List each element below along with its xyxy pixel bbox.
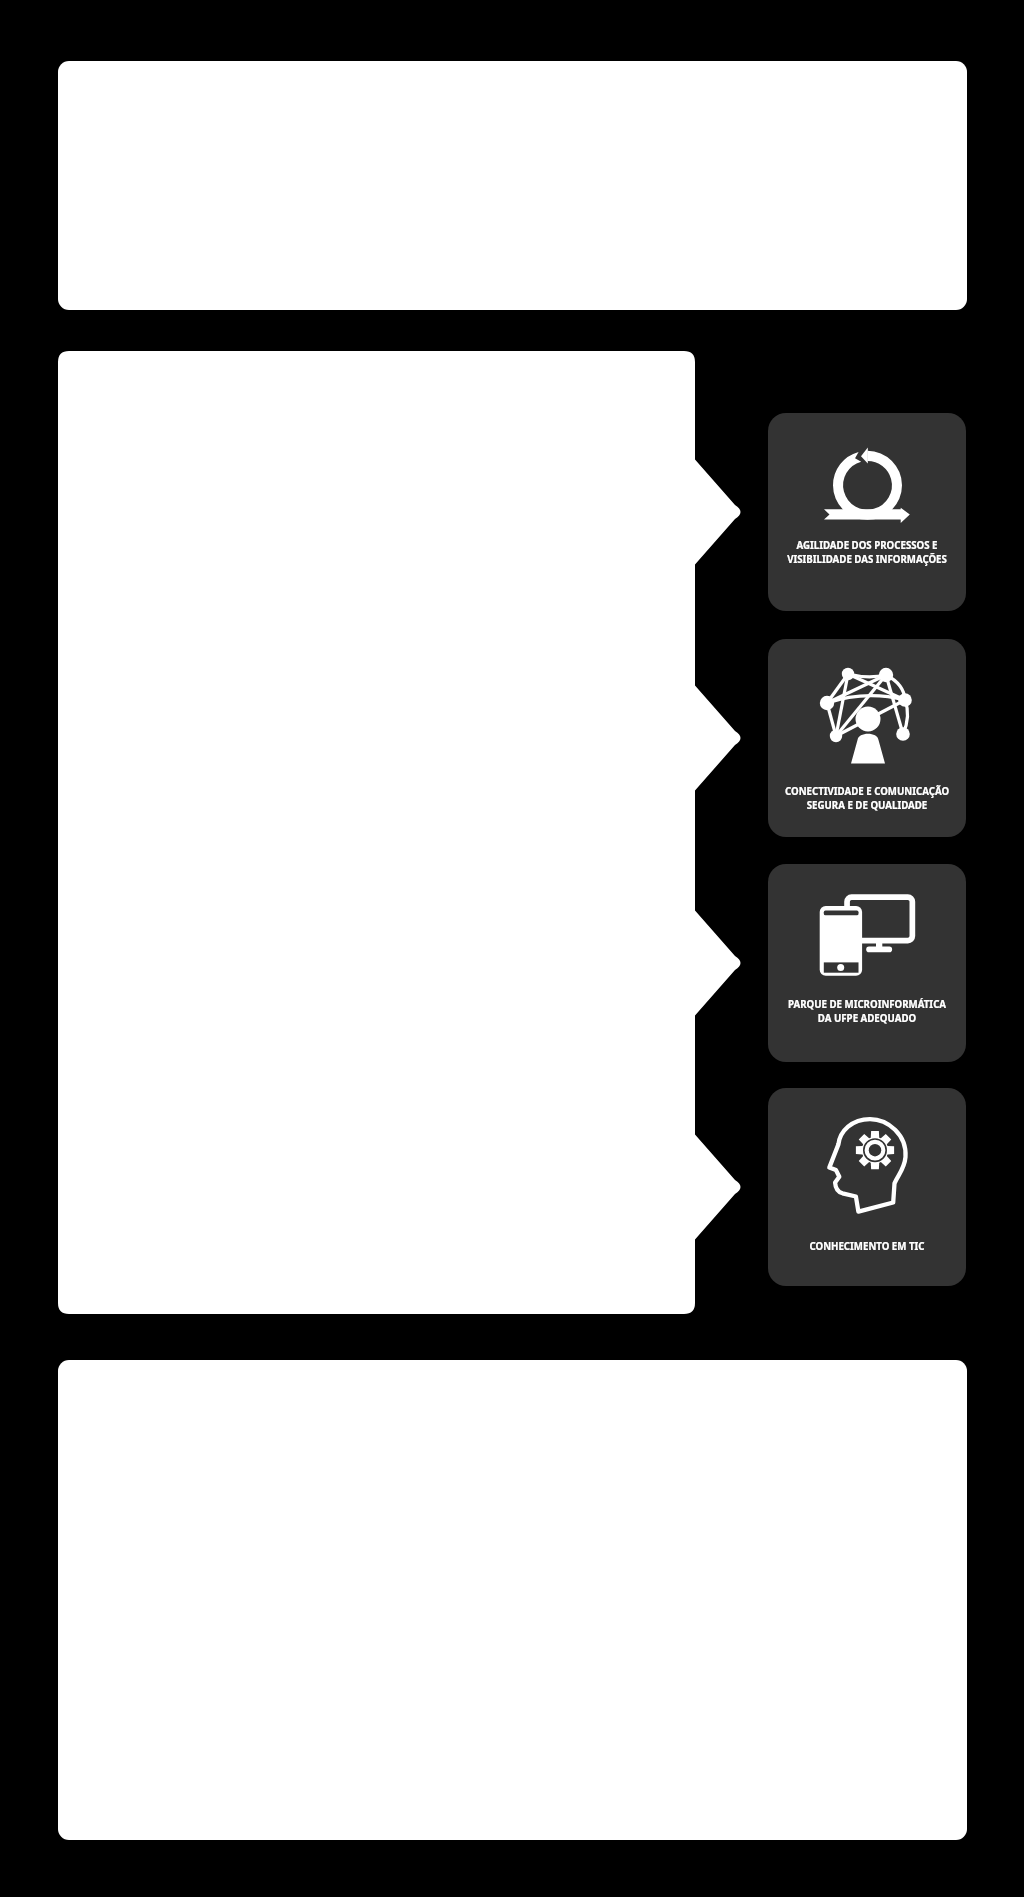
- button[interactable]: AGILIDADE DOS PROCESSOS E VISIBILIDADE D…: [768, 413, 966, 611]
- button[interactable]: CONECTIVIDADE E COMUNICAÇÃO SEGURA E DE …: [768, 639, 966, 837]
- button[interactable]: Cabeçalho: [58, 61, 967, 310]
- button[interactable]: PARQUE DE MICROINFORMÁTICA DA UFPE ADEQU…: [768, 864, 966, 1062]
- button[interactable]: Rodapé: [58, 1360, 967, 1840]
- staticText: AGILIDADE DOS PROCESSOS E VISIBILIDADE D…: [774, 539, 960, 566]
- button[interactable]: CONHECIMENTO EM TIC: [768, 1088, 966, 1286]
- staticText: CONECTIVIDADE E COMUNICAÇÃO SEGURA E DE …: [774, 785, 960, 812]
- button[interactable]: Painel de objetivos: [58, 351, 742, 1314]
- staticText: PARQUE DE MICROINFORMÁTICA DA UFPE ADEQU…: [774, 998, 960, 1025]
- staticText: CONHECIMENTO EM TIC: [774, 1240, 960, 1253]
